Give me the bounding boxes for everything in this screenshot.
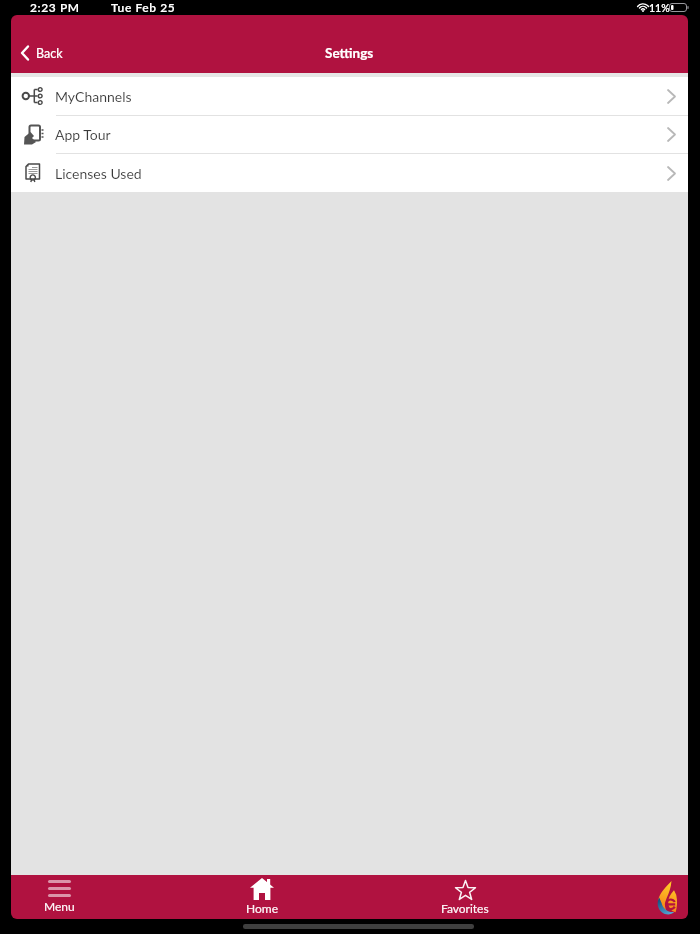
staticText: App Tour	[55, 126, 111, 143]
staticText: 2:23 PM	[30, 0, 80, 14]
staticText: Licenses Used	[55, 165, 142, 182]
staticText: Home	[246, 901, 278, 915]
staticText: Favorites	[441, 901, 489, 915]
button[interactable]: App Tour	[11, 116, 688, 153]
staticText: Settings	[325, 45, 374, 61]
staticText: Tue Feb 25	[111, 0, 176, 14]
button[interactable]	[655, 881, 678, 914]
staticText: Menu	[44, 899, 75, 913]
button[interactable]: Home	[231, 878, 292, 915]
button[interactable]: Favorites	[434, 879, 496, 915]
staticText: 11%	[649, 2, 670, 15]
staticText: Back	[36, 46, 63, 61]
button[interactable]: Menu	[29, 880, 90, 913]
button[interactable]: Back	[19, 45, 63, 61]
button[interactable]: Licenses Used	[11, 154, 688, 192]
staticText: MyChannels	[55, 88, 132, 105]
button[interactable]: MyChannels	[11, 77, 688, 115]
